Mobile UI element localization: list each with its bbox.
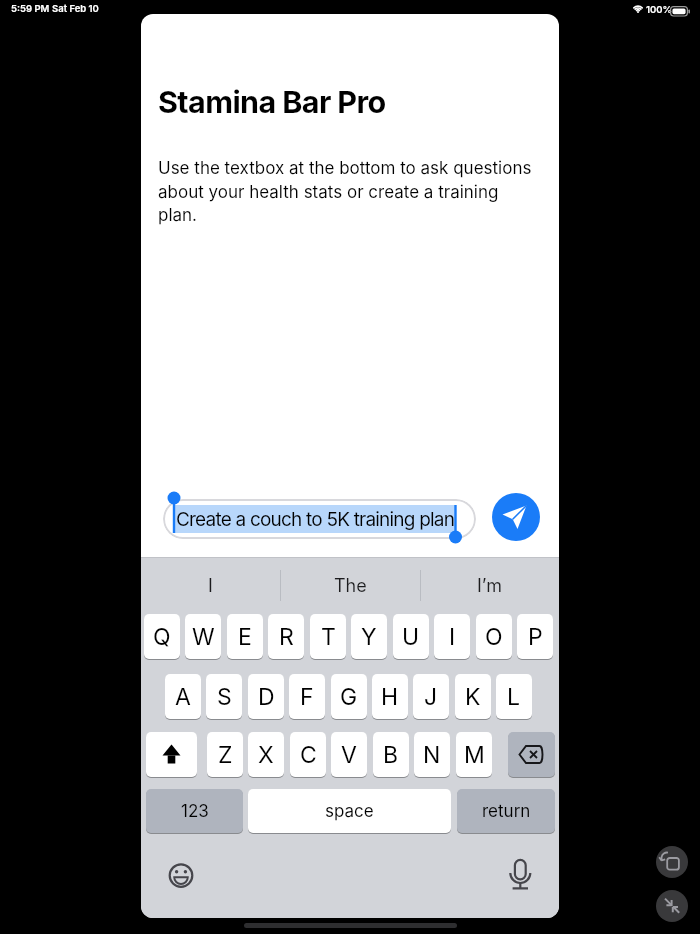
button[interactable]: K <box>455 674 491 719</box>
staticText: F <box>300 683 314 711</box>
button[interactable]: M <box>456 732 492 777</box>
staticText: 100% <box>646 4 673 15</box>
button[interactable]: W <box>185 614 221 659</box>
button[interactable]: space <box>248 789 451 833</box>
staticText: I <box>208 575 213 597</box>
staticText: 123 <box>181 801 209 822</box>
staticText: G <box>340 683 358 711</box>
button[interactable]: L <box>496 674 532 719</box>
staticText: I <box>449 623 456 651</box>
button[interactable]: P <box>517 614 553 659</box>
button[interactable] <box>508 732 555 777</box>
staticText: S <box>217 683 232 711</box>
staticText: X <box>258 741 274 769</box>
button[interactable]: E <box>227 614 263 659</box>
staticText: Y <box>361 623 377 651</box>
staticText: D <box>258 683 275 711</box>
button[interactable]: C <box>290 732 326 777</box>
staticText: B <box>383 741 399 769</box>
button[interactable]: I <box>175 571 245 601</box>
button[interactable]: I <box>434 614 470 659</box>
button[interactable]: J <box>413 674 449 719</box>
staticText: I’m <box>477 575 502 597</box>
staticText: K <box>465 683 481 711</box>
button[interactable]: return <box>457 789 555 833</box>
button[interactable]: V <box>331 732 367 777</box>
button[interactable] <box>163 499 476 539</box>
staticText: Q <box>153 623 171 651</box>
button[interactable]: The <box>315 571 385 601</box>
staticText: E <box>238 623 252 651</box>
staticText: The <box>334 575 367 597</box>
staticText: H <box>381 683 399 711</box>
button[interactable]: S <box>206 674 242 719</box>
staticText: U <box>402 623 420 651</box>
staticText: Create a couch to 5K training plan <box>176 508 455 531</box>
staticText: C <box>300 741 317 769</box>
button[interactable]: T <box>310 614 346 659</box>
staticText: W <box>192 623 215 651</box>
staticText: T <box>321 623 336 651</box>
staticText: R <box>279 623 294 651</box>
staticText: V <box>341 741 357 769</box>
button[interactable]: 123 <box>146 789 243 833</box>
staticText: P <box>528 623 543 651</box>
staticText: 5:59 PM <box>11 3 50 14</box>
button[interactable]: Q <box>144 614 180 659</box>
button[interactable]: R <box>268 614 304 659</box>
button[interactable]: Z <box>207 732 243 777</box>
staticText: space <box>325 801 374 822</box>
staticText: Z <box>218 741 233 769</box>
button[interactable]: Y <box>351 614 387 659</box>
button[interactable] <box>492 493 540 541</box>
button[interactable]: X <box>248 732 284 777</box>
button[interactable]: B <box>373 732 409 777</box>
button[interactable]: D <box>248 674 284 719</box>
button[interactable] <box>656 846 688 878</box>
staticText: J <box>424 683 438 711</box>
button[interactable]: H <box>372 674 408 719</box>
staticText: N <box>423 741 441 769</box>
button[interactable]: A <box>165 674 201 719</box>
button[interactable] <box>146 732 197 777</box>
staticText: Use the textbox at the bottom to ask que… <box>158 158 532 225</box>
staticText: A <box>175 683 191 711</box>
staticText: M <box>464 741 485 769</box>
staticText: return <box>482 801 531 822</box>
button[interactable] <box>656 890 688 922</box>
button[interactable]: F <box>289 674 325 719</box>
staticText: L <box>507 683 521 711</box>
button[interactable]: G <box>331 674 367 719</box>
staticText: Sat Feb 10 <box>52 3 99 14</box>
button[interactable]: U <box>393 614 429 659</box>
button[interactable]: I’m <box>454 571 524 601</box>
staticText: O <box>485 623 503 651</box>
button[interactable]: O <box>476 614 512 659</box>
button[interactable]: N <box>414 732 450 777</box>
staticText: Stamina Bar Pro <box>158 83 386 120</box>
